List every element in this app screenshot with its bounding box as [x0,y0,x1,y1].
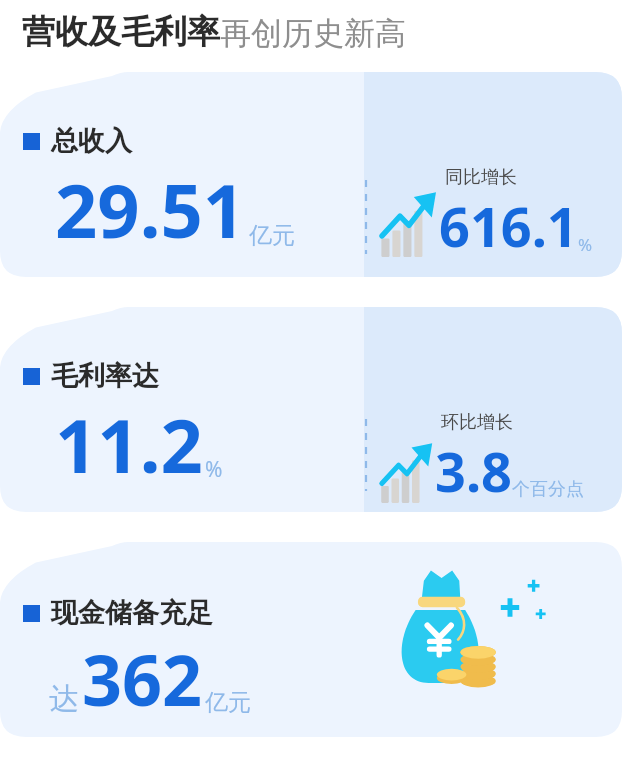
staticText: 毛利率达 [51,359,159,393]
staticText: 11.2 [55,394,203,495]
staticText: 29.51 [55,159,246,260]
other: Cash reserves illustration [392,564,510,692]
staticText: 总收入 [51,124,132,158]
staticText: 3.8 [435,434,512,508]
staticText: 616.1 [439,189,578,263]
staticText: 营收及毛利率 [22,11,220,53]
staticText: 环比增长 [441,411,513,434]
staticText: 个百分点 [512,478,584,501]
staticText: 现金储备充足 [51,596,213,630]
staticText: % [205,455,223,484]
staticText: 同比增长 [445,166,517,189]
staticText: 再创历史新高 [220,14,406,53]
staticText: % [578,233,593,256]
button[interactable]: 总收入 [0,72,622,277]
staticText: 362 [82,631,203,726]
button[interactable]: 现金储备充足 [0,542,622,737]
staticText: 达 [49,680,79,718]
staticText: 亿元 [249,221,295,250]
button[interactable]: 毛利率达 [0,307,622,512]
staticText: 亿元 [205,688,251,717]
